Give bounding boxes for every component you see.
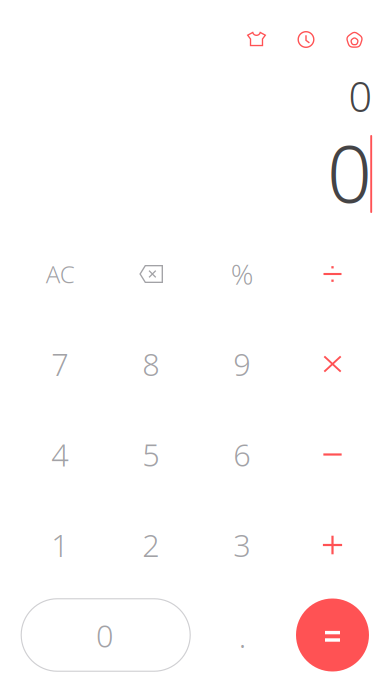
button[interactable]: 4 [15,409,106,499]
staticText: 5 [142,434,160,475]
button[interactable]: Multiply [287,319,378,409]
staticText: 0 [327,120,372,224]
staticText: 7 [51,344,69,384]
button[interactable]: Percent [197,229,288,319]
button[interactable]: Add [287,500,378,590]
staticText: 6 [233,434,251,475]
button[interactable]: 8 [106,319,197,409]
button[interactable]: Divide [287,229,378,319]
button[interactable]: 0 [15,590,197,680]
button[interactable]: Delete [106,229,197,319]
staticText: 8 [142,344,160,384]
staticText: . [239,616,246,656]
staticText: % [231,255,254,293]
button[interactable]: 5 [106,409,197,499]
button[interactable]: 1 [15,500,106,590]
button[interactable]: 7 [15,319,106,409]
button[interactable]: 9 [197,319,288,409]
staticText: 2 [142,525,160,565]
button[interactable]: History [284,17,328,61]
staticText: 9 [233,344,251,384]
button[interactable]: All clear [15,229,106,319]
button[interactable]: Subtract [287,409,378,499]
button[interactable]: Settings [332,17,376,61]
staticText: AC [46,258,75,290]
button[interactable]: 3 [197,500,288,590]
button[interactable]: 2 [106,500,197,590]
button[interactable]: Themes [234,17,278,61]
staticText: 4 [51,434,69,475]
staticText: 0 [348,69,372,123]
staticText: 3 [233,525,251,565]
staticText: 1 [51,525,69,565]
button[interactable]: Equals [287,590,378,680]
button[interactable]: 6 [197,409,288,499]
staticText: 0 [96,615,114,656]
